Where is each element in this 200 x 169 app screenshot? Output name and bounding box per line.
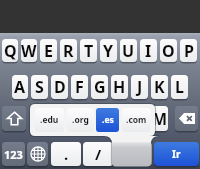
button[interactable]: .edu [35,108,64,132]
button[interactable]: Ir [154,142,199,166]
staticText: P [184,40,194,62]
staticText: Y [103,40,114,62]
button[interactable]: Switch language [27,142,48,166]
button[interactable]: M [151,106,168,131]
staticText: .es [102,114,114,126]
button[interactable]: L [171,75,188,99]
staticText: G [94,76,106,98]
button[interactable]: F [71,75,88,99]
button[interactable]: S [31,75,48,99]
button[interactable]: H [111,75,128,99]
staticText: L [175,76,184,98]
staticText: . [64,144,69,164]
staticText: V [94,108,105,130]
button[interactable]: .es [96,108,119,132]
button[interactable]: Q [2,39,18,62]
button[interactable]: A [12,75,28,99]
button[interactable]: .com [122,108,151,132]
staticText: 123 [4,147,23,162]
button[interactable]: C [71,106,88,131]
button[interactable]: D [51,75,68,99]
button[interactable]: N [131,106,148,131]
button[interactable]: . [51,142,81,166]
staticText: K [154,76,165,98]
staticText: H [113,76,126,98]
staticText: O [162,40,175,62]
staticText: S [35,76,44,98]
button[interactable]: J [131,75,148,99]
button[interactable]: P [180,39,197,62]
button[interactable]: .org [67,108,94,132]
staticText: Q [4,40,17,62]
button[interactable]: Z [33,106,49,131]
button[interactable]: T [80,39,97,62]
staticText: C [74,108,85,130]
staticText: M [152,108,168,130]
button[interactable]: U [120,39,137,62]
button[interactable]: 123 [2,142,25,166]
button[interactable]: / [83,142,113,166]
staticText: F [75,76,84,98]
button[interactable]: E [40,39,57,62]
staticText: Z [36,108,46,130]
button[interactable]: Shift [2,106,26,131]
staticText: I [145,40,152,62]
button[interactable]: R [60,39,77,62]
staticText: .org [72,114,89,126]
staticText: A [14,76,26,98]
button[interactable]: K [151,75,168,99]
button[interactable]: Backspace [175,106,198,131]
staticText: X [55,108,66,130]
staticText: U [122,40,135,62]
staticText: / [95,144,102,164]
button[interactable]: Space [115,142,152,166]
staticText: .edu [40,114,59,126]
button[interactable]: V [91,106,108,131]
staticText: .com [126,114,147,126]
button[interactable]: W [21,39,37,62]
staticText: N [133,108,147,130]
button[interactable]: Y [100,39,117,62]
button[interactable]: O [160,39,177,62]
staticText: W [21,40,37,62]
staticText: Ir [172,147,181,161]
button[interactable]: B [111,106,128,131]
staticText: E [44,40,53,62]
staticText: B [114,108,125,130]
button[interactable]: X [52,106,68,131]
button[interactable]: G [91,75,108,99]
button[interactable]: I [140,39,157,62]
staticText: J [137,76,143,98]
staticText: R [63,40,74,62]
staticText: D [54,76,66,98]
staticText: T [84,40,94,62]
